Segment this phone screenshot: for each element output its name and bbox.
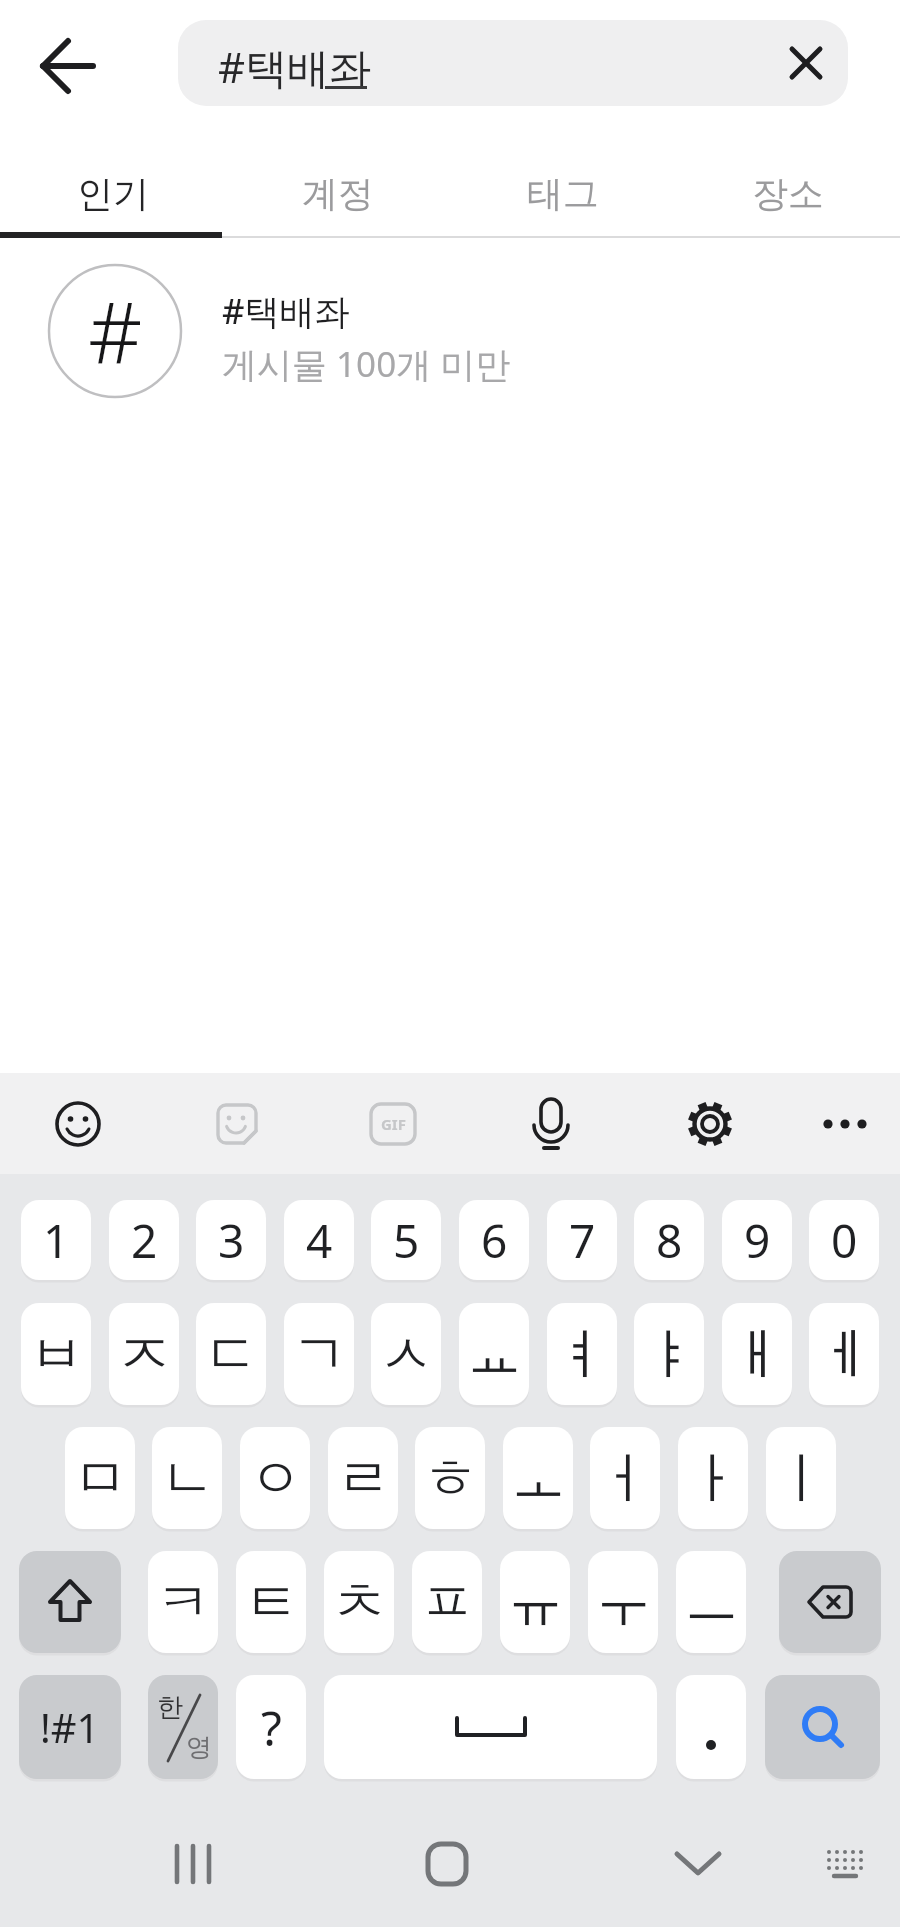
button[interactable]: 2 (109, 1200, 179, 1280)
staticText: 8 (656, 1209, 683, 1272)
button[interactable] (209, 1096, 265, 1152)
button[interactable]: ㅈ (109, 1303, 179, 1405)
staticText: ㅕ (555, 1320, 610, 1389)
button[interactable]: 7 (547, 1200, 617, 1280)
button[interactable]: 인기 (0, 148, 225, 238)
button[interactable]: ㅍ (412, 1551, 482, 1653)
staticText: ㅊ (332, 1568, 387, 1637)
button[interactable] (402, 1820, 492, 1908)
staticText: ㅂ (29, 1320, 84, 1389)
button[interactable]: 6 (459, 1200, 529, 1280)
staticText: 4 (306, 1209, 333, 1272)
button[interactable]: ㅐ (722, 1303, 792, 1405)
button[interactable]: ㅋ (148, 1551, 218, 1653)
button[interactable] (682, 1096, 738, 1152)
button[interactable] (776, 33, 836, 93)
button[interactable]: ㅔ (809, 1303, 879, 1405)
button[interactable]: 0 (809, 1200, 879, 1280)
staticText: ㅔ (817, 1320, 872, 1389)
staticText: ㅛ (467, 1320, 522, 1389)
button[interactable] (523, 1096, 579, 1152)
button[interactable]: ㅡ (676, 1551, 746, 1653)
staticText: 6 (481, 1209, 508, 1272)
staticText: ㅍ (420, 1568, 475, 1637)
button[interactable]: ㅗ (503, 1427, 573, 1529)
button[interactable]: ㅠ (500, 1551, 570, 1653)
button[interactable] (324, 1675, 657, 1779)
button[interactable]: ㄷ (196, 1303, 266, 1405)
button[interactable]: ㅌ (236, 1551, 306, 1653)
staticText: 장소 (752, 171, 824, 216)
staticText: ㅎ (423, 1444, 478, 1513)
staticText: #택배좌 (218, 38, 372, 95)
staticText: ㅑ (642, 1320, 697, 1389)
staticText: ㄷ (204, 1320, 259, 1389)
staticText: ㅇ (248, 1444, 303, 1513)
button[interactable]: ㄱ (284, 1303, 354, 1405)
staticText: 영 (186, 1731, 212, 1764)
button[interactable] (24, 22, 112, 110)
button[interactable]: ㅜ (588, 1551, 658, 1653)
button[interactable] (805, 1820, 885, 1908)
button[interactable]: 계정 (225, 148, 450, 238)
button[interactable]: 태그 (450, 148, 675, 238)
button[interactable]: ㅕ (547, 1303, 617, 1405)
button[interactable]: ㅇ (240, 1427, 310, 1529)
staticText: ㄴ (160, 1444, 215, 1513)
staticText: ㅠ (508, 1568, 563, 1637)
button[interactable]: ? (236, 1675, 306, 1779)
button[interactable]: ㅅ (371, 1303, 441, 1405)
staticText: ㄱ (292, 1320, 347, 1389)
button[interactable]: !#1 (19, 1675, 121, 1779)
staticText: ? (261, 1695, 282, 1760)
button[interactable]: ㅣ (766, 1427, 836, 1529)
button[interactable]: ㅎ (415, 1427, 485, 1529)
staticText: #택배좌 (222, 287, 350, 335)
staticText: 0 (831, 1209, 858, 1272)
button[interactable]: ㅊ (324, 1551, 394, 1653)
button[interactable] (50, 1096, 106, 1152)
button[interactable] (653, 1820, 743, 1908)
button[interactable] (19, 1551, 121, 1653)
button[interactable]: ㅑ (634, 1303, 704, 1405)
staticText: 인기 (77, 171, 149, 216)
staticText: 2 (131, 1209, 158, 1272)
staticText: 5 (393, 1209, 420, 1272)
staticText: ㅅ (379, 1320, 434, 1389)
button[interactable]: 4 (284, 1200, 354, 1280)
staticText: 9 (744, 1209, 771, 1272)
button[interactable]: 장소 (675, 148, 900, 238)
button[interactable]: 3 (196, 1200, 266, 1280)
staticText: ㅓ (598, 1444, 653, 1513)
button[interactable] (676, 1675, 746, 1779)
button[interactable]: #택배좌 (178, 20, 848, 106)
button[interactable] (817, 1096, 873, 1152)
button[interactable]: 1 (21, 1200, 91, 1280)
button[interactable]: # (0, 256, 900, 406)
button[interactable] (148, 1820, 238, 1908)
button[interactable]: 5 (371, 1200, 441, 1280)
button[interactable]: ㄹ (328, 1427, 398, 1529)
button[interactable]: ㅏ (678, 1427, 748, 1529)
button[interactable]: ㅓ (590, 1427, 660, 1529)
staticText: ㅈ (117, 1320, 172, 1389)
button[interactable]: 8 (634, 1200, 704, 1280)
staticText: 7 (569, 1209, 596, 1272)
staticText: ㅗ (511, 1444, 566, 1513)
button[interactable]: ㄴ (152, 1427, 222, 1529)
button[interactable]: ㅂ (21, 1303, 91, 1405)
staticText: 1 (43, 1209, 70, 1272)
button[interactable] (765, 1675, 880, 1779)
staticText: 계정 (302, 171, 374, 216)
staticText: 태그 (527, 171, 599, 216)
button[interactable]: 한 (148, 1675, 218, 1779)
button[interactable]: ㅛ (459, 1303, 529, 1405)
button[interactable]: 9 (722, 1200, 792, 1280)
button[interactable]: GIF (365, 1096, 421, 1152)
staticText: ㅐ (730, 1320, 785, 1389)
button[interactable] (779, 1551, 881, 1653)
button[interactable]: ㅁ (65, 1427, 135, 1529)
staticText: !#1 (40, 1700, 100, 1754)
staticText: GIF (381, 1114, 406, 1134)
staticText: ㅁ (73, 1444, 128, 1513)
